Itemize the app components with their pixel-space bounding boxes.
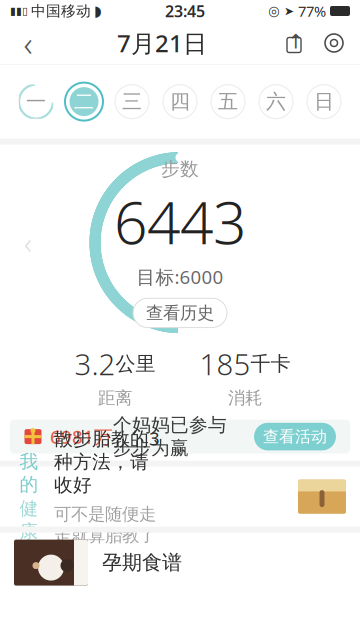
staticText: 五: [218, 89, 238, 114]
staticText: 我的: [19, 450, 38, 496]
staticText: 孕期食谱: [102, 550, 182, 575]
button[interactable]: 分享: [274, 22, 314, 64]
staticText: 个妈妈已参与步步为赢: [113, 414, 227, 460]
staticText: 可不是随便走走就算胎教了哦: [54, 503, 156, 567]
staticText: 四: [170, 89, 190, 114]
staticText: ↑: [287, 30, 304, 53]
button[interactable]: 6981万: [0, 413, 360, 461]
button[interactable]: 孕期食谱: [0, 533, 360, 593]
staticText: 中国移动: [31, 2, 91, 20]
staticText: 散步胎教的3种方法，请收好: [54, 426, 160, 496]
staticText: 3.2: [74, 344, 115, 383]
staticText: 查看历史: [146, 302, 214, 324]
staticText: 185: [199, 344, 250, 383]
staticText: ◗: [94, 3, 102, 19]
staticText: 公里: [115, 352, 155, 376]
staticText: 健康: [19, 497, 38, 543]
button[interactable]: 查看历史: [133, 298, 227, 328]
staticText: 一: [26, 89, 46, 114]
staticText: 步数: [161, 158, 199, 180]
button[interactable]: 一: [12, 72, 60, 132]
staticText: ◎: [268, 3, 280, 18]
button[interactable]: 返回: [6, 22, 50, 64]
staticText: ‹: [23, 20, 32, 66]
staticText: ▮▮▯: [10, 5, 28, 17]
button[interactable]: 前一天: [10, 218, 46, 268]
button[interactable]: 我的: [0, 467, 360, 527]
staticText: ➤: [284, 4, 294, 18]
button[interactable]: 六: [252, 72, 300, 132]
staticText: 23:45: [165, 0, 205, 22]
button[interactable]: 五: [204, 72, 252, 132]
staticText: 6981万: [50, 424, 113, 449]
staticText: 7月21日: [117, 27, 207, 59]
button[interactable]: 四: [156, 72, 204, 132]
button[interactable]: 日: [300, 72, 348, 132]
staticText: 距离: [98, 387, 132, 409]
staticText: 三: [122, 89, 142, 114]
staticText: 消耗: [228, 387, 262, 409]
staticText: ‹: [24, 223, 32, 262]
staticText: 77%: [298, 1, 326, 21]
staticText: 6443: [114, 183, 246, 260]
staticText: 千卡: [250, 352, 290, 376]
staticText: 二: [74, 89, 94, 114]
button[interactable]: 二: [60, 72, 108, 132]
staticText: 六: [266, 89, 286, 114]
button[interactable]: 设置: [314, 22, 354, 64]
staticText: 日: [314, 89, 334, 114]
button[interactable]: 三: [108, 72, 156, 132]
staticText: 查看活动: [263, 427, 327, 446]
staticText: 目标:6000: [136, 264, 223, 289]
